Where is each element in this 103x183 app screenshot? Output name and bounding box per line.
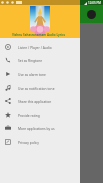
staticText: Provide rating [18, 113, 40, 117]
staticText: Share this application [18, 99, 52, 103]
button[interactable]: Set as Ringtone [0, 53, 80, 66]
staticText: Use as notification tone [18, 86, 55, 90]
staticText: Vishnu Sahasranamam Audio Lyrics [12, 33, 66, 37]
button[interactable]: Use as alarm tone [0, 67, 80, 80]
button[interactable]: App icon [87, 10, 96, 19]
button[interactable]: Privacy policy [0, 135, 80, 148]
button[interactable]: Use as notification tone [0, 81, 80, 94]
staticText: Privacy policy [18, 140, 39, 144]
staticText: Listen / Player / Audio [18, 45, 52, 49]
staticText: Use as alarm tone [18, 72, 46, 76]
staticText: 12:05 PM [88, 1, 101, 5]
staticText: Set as Ringtone [18, 58, 43, 62]
staticText: More applications by us [18, 126, 55, 130]
button[interactable]: Listen / Player / Audio [0, 40, 80, 53]
button[interactable]: Provide rating [0, 108, 80, 121]
button[interactable]: Share this application [0, 94, 80, 107]
button[interactable]: More applications by us [0, 121, 80, 134]
